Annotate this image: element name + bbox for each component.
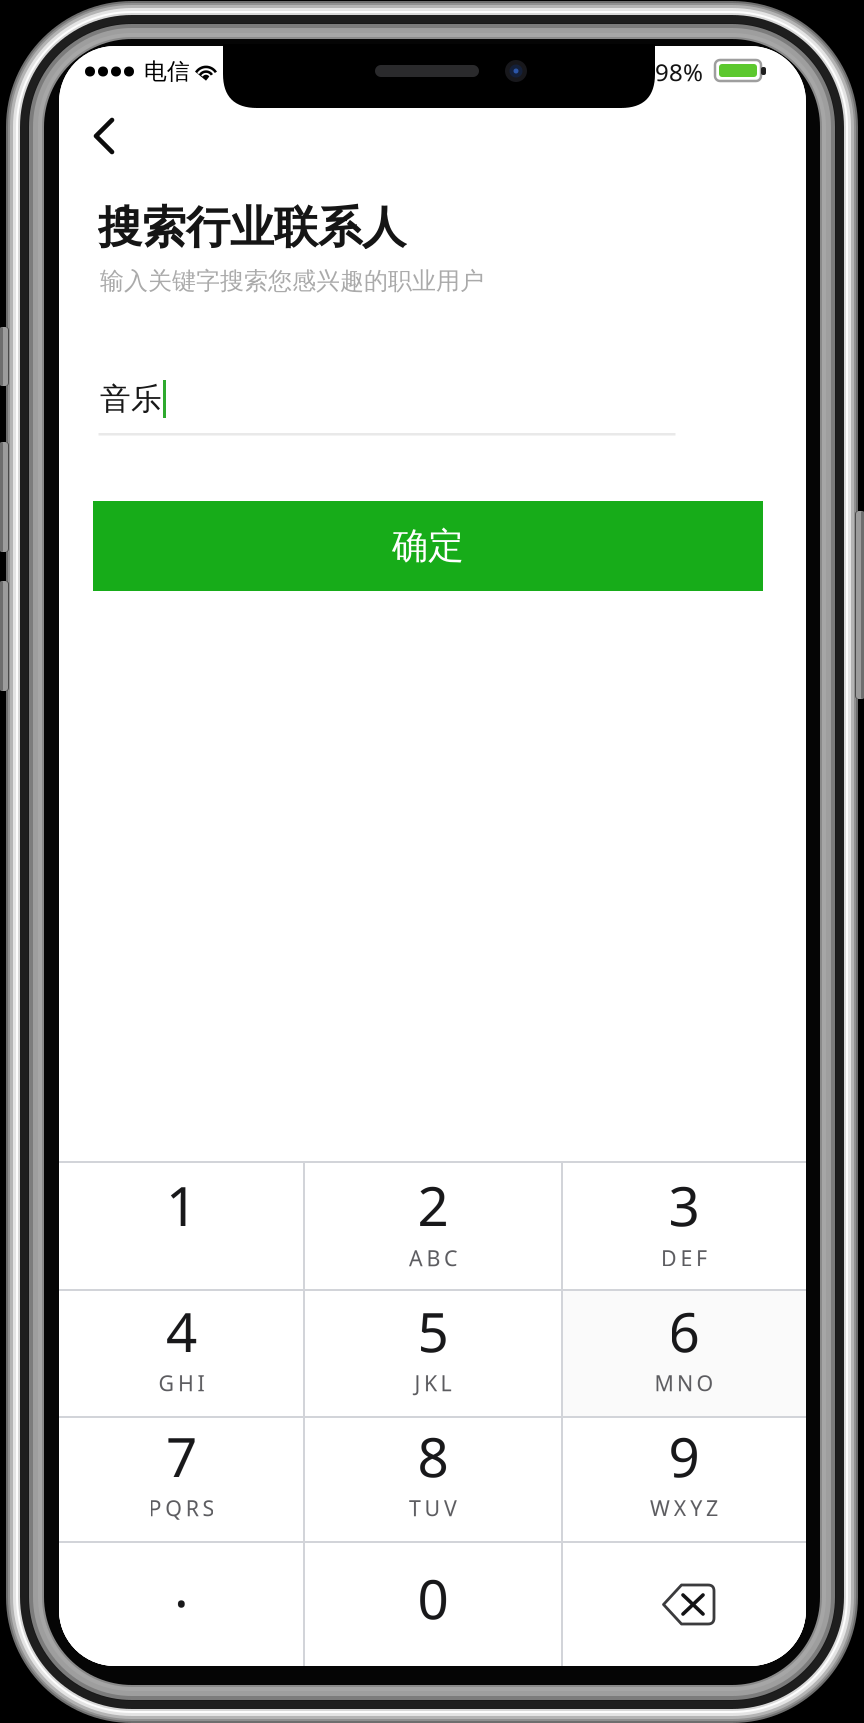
staticText: PQRS <box>149 1494 214 1522</box>
staticText: 输入关键字搜索您感兴趣的职业用户 <box>100 266 484 296</box>
staticText: 搜索行业联系人 <box>98 200 406 254</box>
staticText: GHI <box>158 1369 205 1397</box>
staticText: 9 <box>668 1420 699 1492</box>
button[interactable]: 5 <box>304 1289 562 1416</box>
button[interactable]: 3 <box>562 1161 806 1289</box>
staticText: 6 <box>668 1295 699 1367</box>
staticText: WXYZ <box>650 1494 718 1522</box>
button[interactable]: Delete <box>562 1541 806 1666</box>
button[interactable]: . <box>59 1541 304 1666</box>
staticText: 确定 <box>392 524 464 568</box>
staticText: 电信 <box>144 58 190 85</box>
staticText: 5 <box>417 1295 448 1367</box>
staticText: 2 <box>417 1169 448 1241</box>
staticText: 8 <box>417 1420 448 1492</box>
staticText: 1 <box>166 1169 197 1241</box>
staticText: JKL <box>414 1369 452 1397</box>
button[interactable]: 确定 <box>93 501 763 591</box>
button[interactable]: 8 <box>304 1416 562 1541</box>
button[interactable]: 0 <box>304 1541 562 1666</box>
staticText: TUV <box>409 1494 457 1522</box>
button[interactable]: 1 <box>59 1161 304 1289</box>
button[interactable]: 7 <box>59 1416 304 1541</box>
button[interactable]: 9 <box>562 1416 806 1541</box>
staticText: ABC <box>409 1244 457 1272</box>
staticText: DEF <box>661 1244 707 1272</box>
staticText: 98% <box>655 56 703 88</box>
staticText: 音乐 <box>100 380 162 418</box>
button[interactable]: Back <box>67 96 159 176</box>
staticText: . <box>174 1550 189 1622</box>
staticText: 4 <box>166 1295 197 1367</box>
staticText: 0 <box>417 1562 448 1634</box>
staticText: 7 <box>166 1420 197 1492</box>
staticText: 3 <box>668 1169 699 1241</box>
staticText: MNO <box>654 1369 714 1397</box>
button[interactable]: 6 <box>562 1289 806 1416</box>
button[interactable]: 4 <box>59 1289 304 1416</box>
button[interactable]: 2 <box>304 1161 562 1289</box>
